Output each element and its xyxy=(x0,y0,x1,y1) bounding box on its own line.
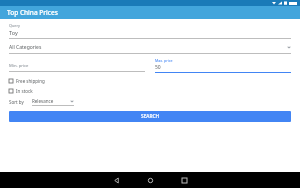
staticText: 50 xyxy=(155,64,161,71)
staticText: Query xyxy=(9,23,20,28)
button[interactable]: Free shipping xyxy=(9,78,45,84)
staticText: Top China Prices xyxy=(7,8,58,17)
staticText: Max. price xyxy=(155,58,173,63)
staticText: Min. price xyxy=(9,63,29,69)
button[interactable]: Back xyxy=(106,172,126,188)
staticText: Relevance xyxy=(32,98,70,104)
button[interactable]: Home xyxy=(140,172,160,188)
staticText: Sort by xyxy=(9,99,24,105)
staticText: Free shipping xyxy=(16,78,45,84)
button[interactable]: In stock xyxy=(9,88,33,94)
button[interactable]: Max. price xyxy=(155,58,291,73)
staticText: Toy xyxy=(9,29,18,36)
staticText: All Categories xyxy=(9,44,287,51)
other: Expand sort options xyxy=(70,100,74,103)
staticText: In stock xyxy=(16,88,33,94)
button[interactable]: All Categories xyxy=(9,44,291,54)
button[interactable]: Recent apps xyxy=(174,172,194,188)
button[interactable]: Toy xyxy=(9,29,291,39)
button[interactable]: Relevance xyxy=(32,98,74,106)
button[interactable]: Min. price xyxy=(9,58,145,72)
other: Expand categories xyxy=(287,46,291,49)
button[interactable]: SEARCH xyxy=(9,111,291,122)
staticText: SEARCH xyxy=(141,113,160,120)
